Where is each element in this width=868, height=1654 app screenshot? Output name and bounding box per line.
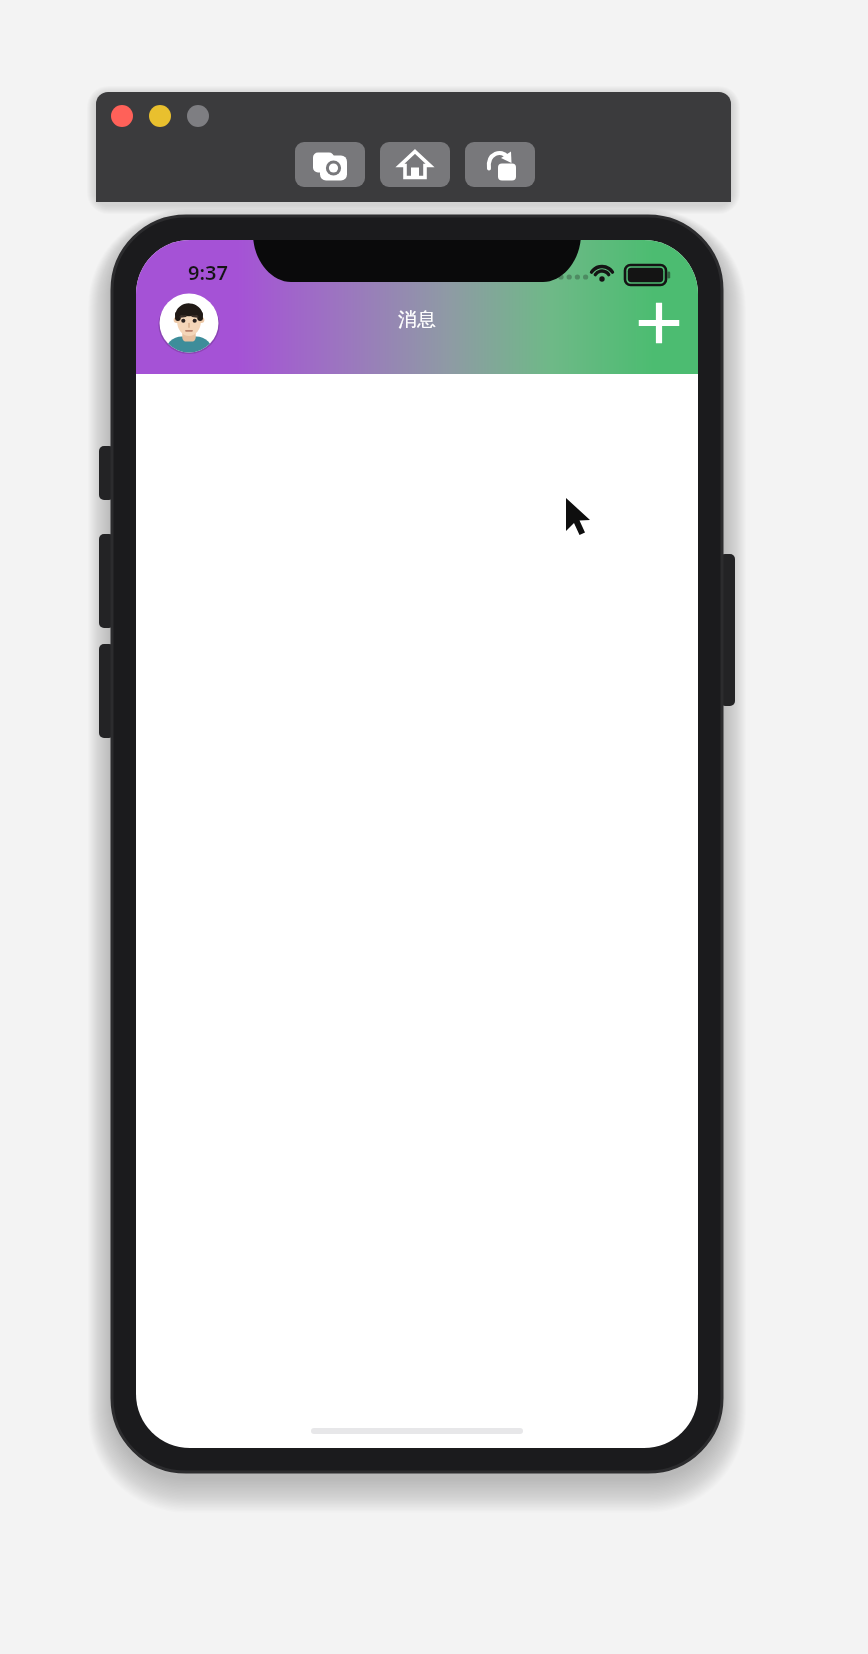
staticText: 9:37 [188,259,228,286]
button[interactable]: Profile [158,292,220,354]
button[interactable]: New message [628,292,690,354]
staticText: 消息 [398,308,436,332]
